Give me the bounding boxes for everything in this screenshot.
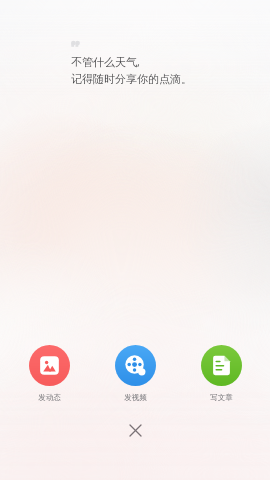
button[interactable]: 发动态 — [18, 345, 80, 402]
staticText: 不管什么天气, — [71, 54, 140, 69]
button[interactable]: Close — [122, 417, 148, 443]
staticText: 写文章 — [210, 393, 233, 402]
button[interactable]: 写文章 — [190, 345, 252, 402]
staticText: 记得随时分享你的点滴。 — [71, 72, 192, 86]
staticText: 发视频 — [124, 393, 147, 402]
button[interactable]: 发视频 — [104, 345, 166, 402]
staticText: 发动态 — [38, 393, 61, 402]
